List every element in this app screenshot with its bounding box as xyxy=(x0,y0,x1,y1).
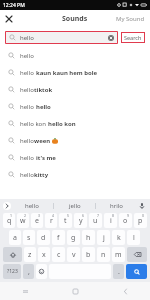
button[interactable]: z xyxy=(24,247,36,262)
button[interactable]: n xyxy=(97,247,110,262)
staticText: kaun kaun hem bole xyxy=(36,69,98,77)
staticText: kitty xyxy=(34,171,49,179)
staticText: p xyxy=(138,216,143,226)
button[interactable]: Search xyxy=(121,32,145,43)
staticText: hello kon xyxy=(48,120,76,128)
button[interactable]: hello xyxy=(5,31,118,44)
button[interactable]: Voice input xyxy=(137,199,147,212)
staticText: it's me xyxy=(36,154,56,162)
button[interactable]: My Sound xyxy=(111,12,150,26)
button[interactable]: ?123 xyxy=(3,264,21,279)
button[interactable]: , xyxy=(23,264,34,279)
button[interactable]: g xyxy=(67,230,80,245)
button[interactable]: Home xyxy=(50,282,100,300)
button[interactable]: b xyxy=(82,247,95,262)
button[interactable]: y xyxy=(74,213,87,228)
button[interactable]: Back xyxy=(100,282,150,300)
staticText: hello xyxy=(20,69,36,77)
button[interactable]: m xyxy=(112,247,125,262)
staticText: 0 xyxy=(142,213,145,218)
button[interactable]: hello xyxy=(0,64,150,81)
staticText: hello xyxy=(20,171,34,179)
button[interactable]: h xyxy=(82,230,95,245)
button[interactable]: u xyxy=(89,213,102,228)
staticText: y xyxy=(79,216,83,226)
button[interactable]: Search xyxy=(126,264,147,279)
button[interactable]: e xyxy=(31,213,43,228)
staticText: j xyxy=(103,233,105,243)
button[interactable]: hello xyxy=(0,98,150,115)
staticText: u xyxy=(93,216,98,226)
button[interactable]: hello kon xyxy=(0,115,150,132)
staticText: ?123 xyxy=(7,268,18,275)
staticText: r xyxy=(50,216,53,226)
button[interactable]: Backspace xyxy=(127,247,147,262)
staticText: l xyxy=(133,233,135,243)
button[interactable]: c xyxy=(52,247,65,262)
staticText: f xyxy=(57,233,60,243)
staticText: Search xyxy=(124,34,142,41)
staticText: w xyxy=(20,216,26,226)
staticText: i xyxy=(110,216,112,226)
button[interactable]: hello xyxy=(0,149,150,166)
staticText: hello xyxy=(20,154,36,162)
staticText: a xyxy=(13,233,17,243)
staticText: hrilo xyxy=(110,202,123,210)
button[interactable]: Clear xyxy=(107,34,114,41)
button[interactable]: Emoji xyxy=(36,264,47,279)
button[interactable]: j xyxy=(97,230,110,245)
button[interactable]: r xyxy=(45,213,57,228)
button[interactable]: p xyxy=(134,213,147,228)
button[interactable]: hello xyxy=(0,166,150,183)
button[interactable]: a xyxy=(9,230,21,245)
button[interactable]: f xyxy=(52,230,65,245)
staticText: 1 xyxy=(10,213,13,218)
staticText: g xyxy=(71,233,76,243)
staticText: c xyxy=(57,250,61,260)
staticText: hello xyxy=(20,34,34,42)
button[interactable]: x xyxy=(38,247,50,262)
button[interactable]: Shift xyxy=(3,247,22,262)
button[interactable]: o xyxy=(119,213,132,228)
staticText: My Sound xyxy=(116,15,145,23)
button[interactable]: d xyxy=(37,230,50,245)
button[interactable]: w xyxy=(17,213,29,228)
staticText: 12:24 PM xyxy=(3,2,25,9)
button[interactable]: i xyxy=(104,213,117,228)
button[interactable]: hello xyxy=(0,81,150,98)
staticText: v xyxy=(72,250,76,260)
button[interactable]: . xyxy=(113,264,124,279)
staticText: 4 xyxy=(52,213,55,218)
staticText: tiktok xyxy=(34,86,53,94)
staticText: 7 xyxy=(97,213,100,218)
button[interactable]: hello xyxy=(0,47,150,64)
staticText: hello xyxy=(25,202,39,210)
button[interactable]: v xyxy=(67,247,80,262)
staticText: d xyxy=(41,233,46,243)
button[interactable]: hrilo xyxy=(96,199,137,212)
staticText: ween xyxy=(34,137,51,145)
staticText: t xyxy=(64,216,67,226)
staticText: 5 xyxy=(67,213,70,218)
button[interactable]: hello xyxy=(11,199,53,212)
staticText: m xyxy=(115,250,122,260)
button[interactable]: Recents xyxy=(0,282,50,300)
button[interactable]: q xyxy=(3,213,15,228)
button[interactable]: l xyxy=(127,230,140,245)
staticText: 6 xyxy=(82,213,85,218)
staticText: 8 xyxy=(112,213,115,218)
staticText: o xyxy=(123,216,128,226)
staticText: n xyxy=(101,250,106,260)
staticText: hello xyxy=(36,103,51,111)
button[interactable]: hello xyxy=(0,132,150,149)
button[interactable]: jello xyxy=(54,199,95,212)
button[interactable]: s xyxy=(23,230,35,245)
staticText: k xyxy=(117,233,121,243)
staticText: h xyxy=(86,233,91,243)
button[interactable]: Close xyxy=(3,13,14,24)
button[interactable]: t xyxy=(59,213,72,228)
button[interactable]: More suggestions xyxy=(3,202,11,210)
button[interactable]: k xyxy=(112,230,125,245)
staticText: hello xyxy=(20,52,34,60)
